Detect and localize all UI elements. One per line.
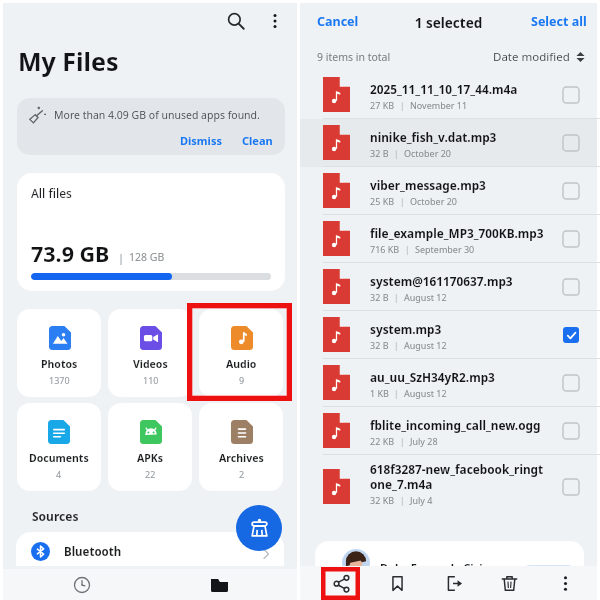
staticText: Audio [226, 357, 257, 371]
staticText: 4 [56, 468, 62, 480]
staticText: Archives [219, 451, 264, 465]
staticText: 1 KB [370, 387, 389, 399]
button[interactable]: Date modified [490, 47, 588, 67]
staticText: 2025_11_11_10_17_44.m4a [370, 81, 518, 97]
button[interactable]: system@161170637.mp3 [300, 263, 597, 311]
staticText: August 12 [404, 291, 447, 303]
staticText: | [389, 339, 404, 351]
button[interactable]: Clean [237, 130, 278, 151]
button[interactable]: APKs [108, 403, 192, 491]
staticText: My Files [18, 44, 119, 78]
staticText: fblite_incoming_call_new.ogg [370, 417, 541, 433]
staticText: October 20 [410, 195, 458, 207]
button[interactable]: Move [437, 566, 471, 600]
button[interactable]: ninike_fish_v.dat.mp3 [300, 119, 597, 167]
button[interactable]: Select all [524, 7, 594, 36]
button[interactable]: au_uu_SzH34yR2.mp3 [300, 359, 597, 407]
staticText: ninike_fish_v.dat.mp3 [370, 129, 497, 145]
button[interactable]: file_example_MP3_700KB.mp3 [300, 215, 597, 263]
staticText: 22 [145, 468, 156, 480]
staticText: August 12 [404, 339, 447, 351]
staticText: 32 B [370, 291, 389, 303]
button[interactable]: Dismiss [175, 130, 227, 151]
staticText: 128 GB [129, 250, 165, 264]
staticText: | [395, 195, 410, 207]
staticText: July 28 [410, 435, 438, 447]
staticText: viber_message.mp3 [370, 177, 486, 193]
staticText: 110 [143, 374, 159, 386]
staticText: Bluetooth [64, 544, 122, 560]
button[interactable]: 618f3287-new_facebook_ringt one_7.m4a [300, 455, 597, 519]
staticText: 22 KB [370, 435, 395, 447]
staticText: | [389, 147, 404, 159]
staticText: system@161170637.mp3 [370, 273, 513, 289]
staticText: Documents [29, 451, 89, 465]
button[interactable]: Bluetooth [16, 532, 284, 566]
staticText: October 20 [404, 147, 452, 159]
staticText: 32 B [370, 147, 389, 159]
staticText: | [400, 243, 415, 255]
staticText: | [395, 435, 410, 447]
button[interactable]: More than 4.09 GB of unused apps found. [17, 98, 285, 155]
button[interactable]: Clean up [236, 505, 282, 551]
staticText: Sources [32, 508, 79, 524]
button[interactable]: Cancel [310, 7, 366, 36]
staticText: Select all [531, 13, 587, 30]
staticText: system.mp3 [370, 321, 442, 337]
staticText: | [395, 99, 410, 111]
staticText: 2 [239, 468, 245, 480]
button[interactable]: More options [259, 5, 291, 37]
staticText: 1370 [49, 374, 70, 386]
staticText: 1 selected [300, 14, 597, 32]
button[interactable]: Audio [199, 309, 283, 397]
staticText: 9 [239, 374, 245, 386]
staticText: APKs [137, 451, 164, 465]
staticText: Dola: Formerly Cici [380, 560, 483, 571]
button[interactable]: system.mp3 [300, 311, 597, 359]
button[interactable]: Search [220, 5, 252, 37]
button[interactable]: Files [202, 569, 236, 600]
staticText: file_example_MP3_700KB.mp3 [370, 225, 544, 241]
staticText: 9 items in total [317, 50, 391, 64]
button[interactable]: fblite_incoming_call_new.ogg [300, 407, 597, 455]
staticText: August 12 [404, 387, 447, 399]
button[interactable]: All files [17, 173, 285, 291]
staticText: | [389, 387, 404, 399]
staticText: Photos [41, 357, 78, 371]
staticText: | [395, 494, 410, 506]
button[interactable]: Recent [65, 569, 99, 600]
staticText: All files [31, 185, 72, 201]
staticText: Date modified [493, 49, 570, 65]
staticText: 716 KB [370, 243, 400, 255]
staticText: 27 KB [370, 99, 395, 111]
button[interactable]: Bookmark [380, 566, 414, 600]
staticText: Videos [133, 357, 168, 371]
button[interactable]: Archives [199, 403, 283, 491]
button[interactable]: 2025_11_11_10_17_44.m4a [300, 71, 597, 119]
staticText: September 30 [415, 243, 475, 255]
staticText: Cancel [317, 13, 359, 30]
button[interactable]: Share [324, 566, 358, 600]
staticText: More than 4.09 GB of unused apps found. [54, 108, 260, 122]
button[interactable]: More options [548, 566, 582, 600]
staticText: 32 KB [370, 494, 395, 506]
staticText: 25 KB [370, 195, 395, 207]
staticText: July 4 [410, 494, 433, 506]
staticText: 32 B [370, 339, 389, 351]
button[interactable]: Documents [17, 403, 101, 491]
staticText: Dismiss [180, 133, 222, 148]
button[interactable]: Delete [492, 566, 526, 600]
button[interactable]: Videos [108, 309, 192, 397]
staticText: Clean [242, 133, 273, 148]
staticText: au_uu_SzH34yR2.mp3 [370, 369, 495, 385]
staticText: 73.9 GB [31, 239, 110, 268]
staticText: | [389, 291, 404, 303]
staticText: November 11 [410, 99, 468, 111]
button[interactable]: Photos [17, 309, 101, 397]
staticText: | [118, 250, 125, 265]
button[interactable]: viber_message.mp3 [300, 167, 597, 215]
staticText: 618f3287-new_facebook_ringt one_7.m4a [370, 461, 544, 492]
